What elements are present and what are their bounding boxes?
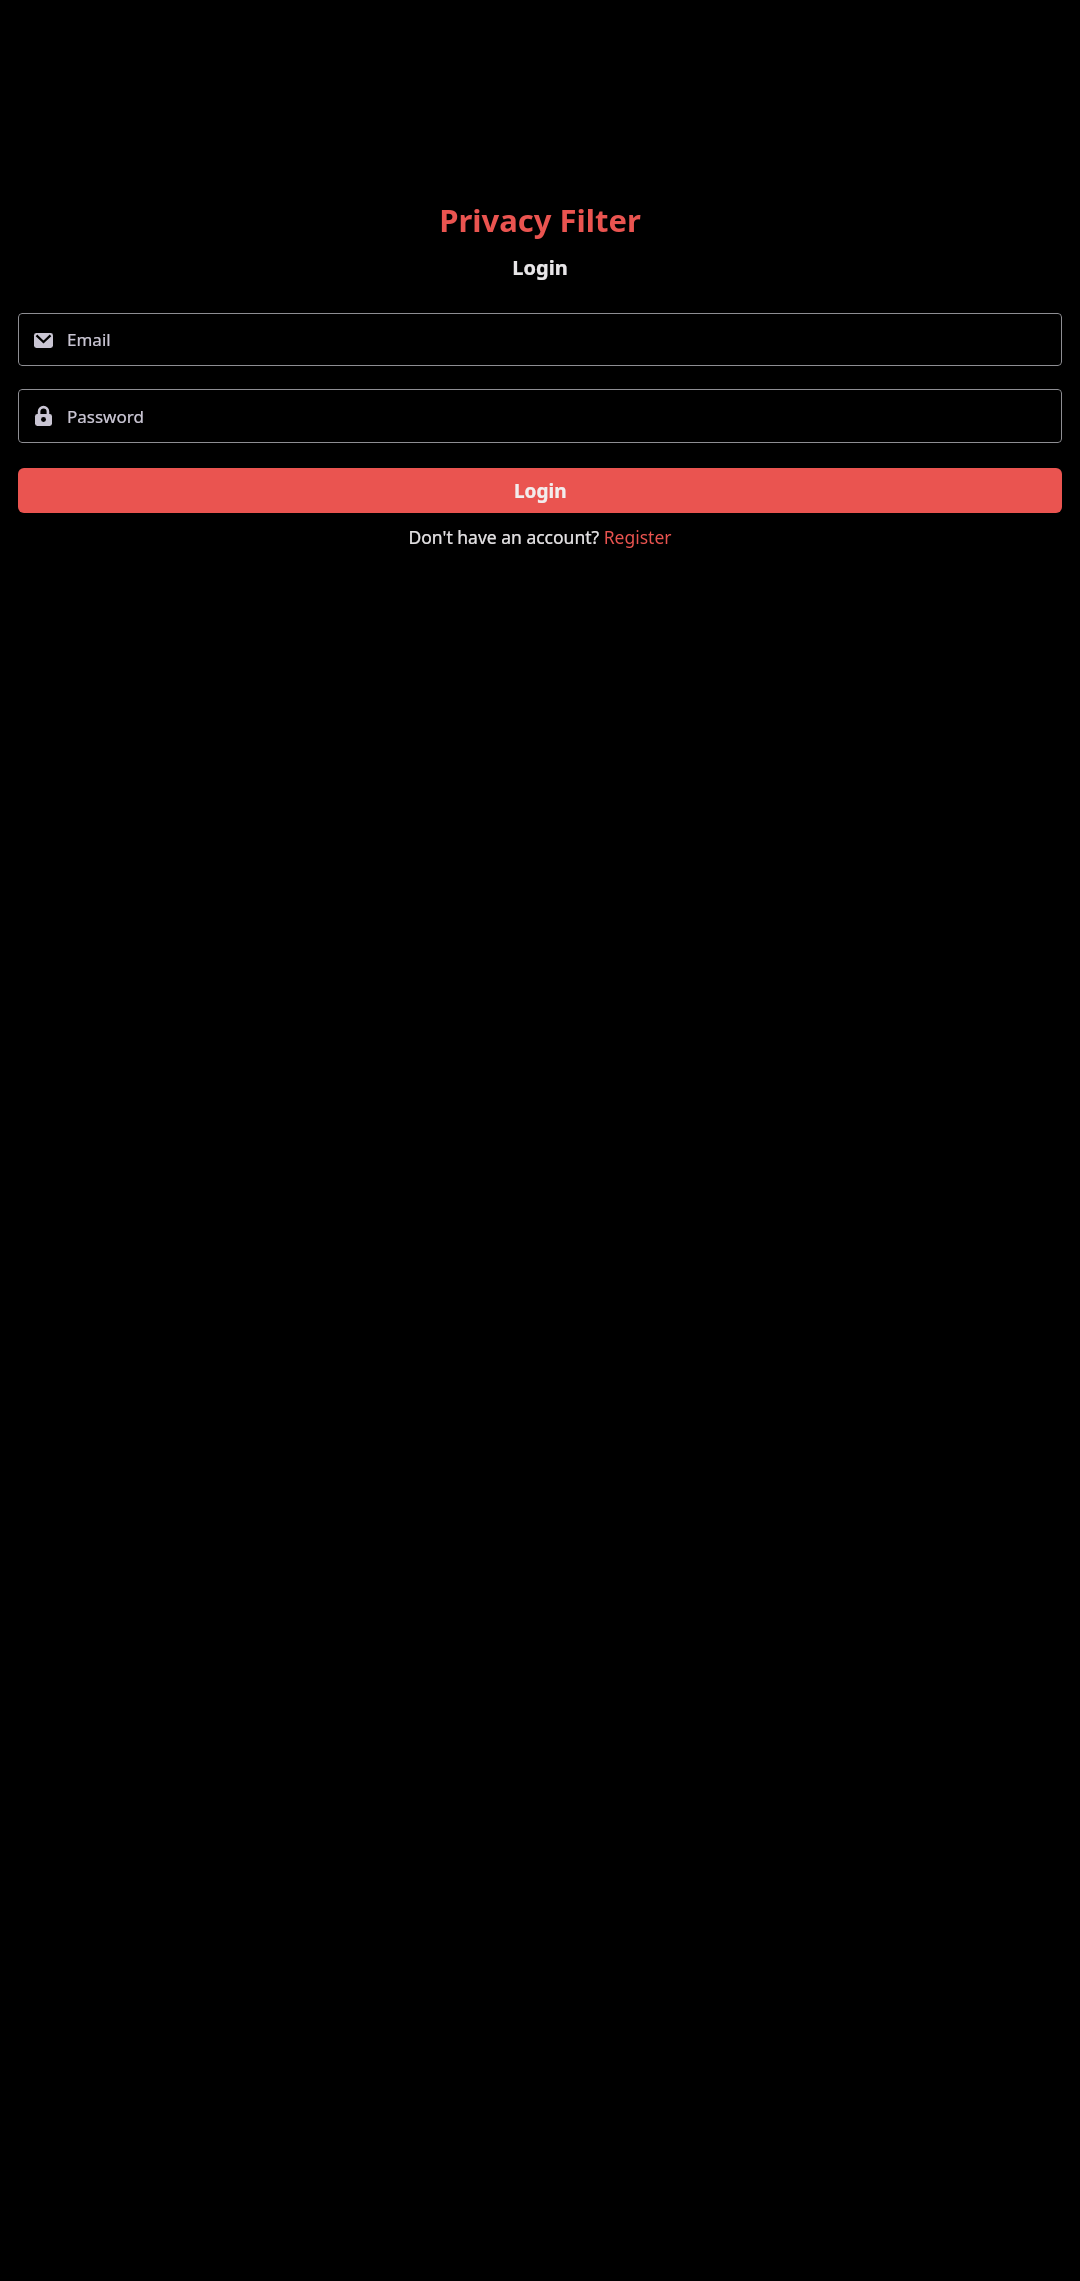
staticText: Password [67,405,144,428]
other: Email [31,328,55,352]
button[interactable]: Login [18,468,1062,513]
button[interactable]: Don't have an account? Register [18,525,1062,549]
staticText: Don't have an account? Register [408,525,672,549]
staticText: Login [514,478,567,504]
staticText: Email [67,328,111,351]
staticText: Privacy Filter [439,199,641,241]
staticText: Login [512,254,568,281]
button[interactable]: Email [18,313,1062,366]
other: Password [31,404,55,428]
button[interactable]: Password [18,389,1062,443]
